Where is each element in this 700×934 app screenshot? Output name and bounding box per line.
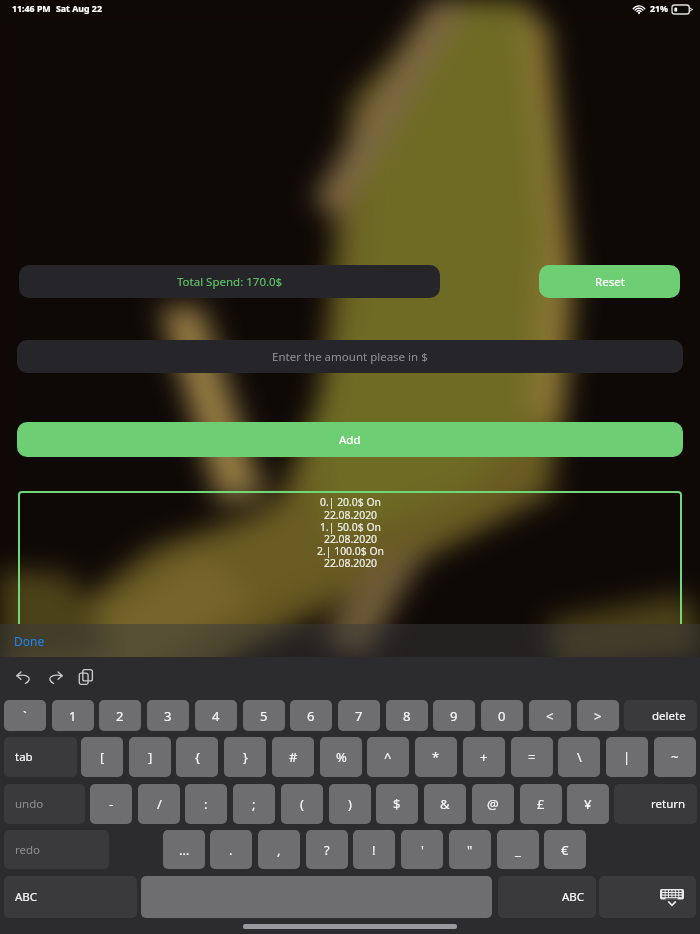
button[interactable]: 2 <box>99 700 141 731</box>
button[interactable]: Undo <box>10 663 38 691</box>
staticText: / <box>157 795 162 813</box>
button[interactable]: ? <box>306 830 348 869</box>
staticText: % <box>336 748 347 766</box>
button[interactable]: & <box>424 784 466 824</box>
staticText: ! <box>372 841 376 859</box>
button[interactable]: ` <box>4 700 46 731</box>
button[interactable]: { <box>176 737 218 777</box>
button[interactable]: ; <box>233 784 275 824</box>
button[interactable]: - <box>90 784 132 824</box>
button[interactable]: , <box>258 830 300 869</box>
staticText: < <box>546 707 554 725</box>
button[interactable]: Enter the amount please in $ <box>17 340 683 373</box>
button[interactable]: " <box>449 830 491 869</box>
button[interactable]: ) <box>329 784 371 824</box>
button[interactable]: 7 <box>338 700 380 731</box>
staticText: + <box>480 748 488 766</box>
staticText: ABC <box>15 889 38 905</box>
button[interactable]: 5 <box>243 700 285 731</box>
staticText: _ <box>515 841 521 859</box>
button[interactable]: = <box>511 737 553 777</box>
staticText: 5 <box>260 707 268 725</box>
staticText: 2 <box>116 707 124 725</box>
staticText: ` <box>23 707 27 725</box>
staticText: | <box>623 748 631 766</box>
staticText: & <box>440 795 450 813</box>
button[interactable]: + <box>463 737 505 777</box>
staticText: $ <box>393 795 401 813</box>
button[interactable]: ¥ <box>567 784 609 824</box>
staticText: tab <box>15 749 33 765</box>
button[interactable]: # <box>272 737 314 777</box>
button[interactable]: \ <box>558 737 600 777</box>
staticText: return <box>651 796 686 812</box>
staticText: } <box>243 748 248 766</box>
button[interactable]: redo <box>4 830 109 869</box>
button[interactable]: 6 <box>290 700 332 731</box>
staticText: " <box>467 841 473 859</box>
button[interactable]: ~ <box>654 737 696 777</box>
button[interactable]: } <box>224 737 266 777</box>
button[interactable]: 1 <box>52 700 94 731</box>
button[interactable]: : <box>185 784 227 824</box>
staticText: , <box>277 841 281 859</box>
button[interactable]: _ <box>497 830 539 869</box>
button[interactable]: 0 <box>481 700 523 731</box>
staticText: @ <box>487 795 499 813</box>
button[interactable]: * <box>415 737 457 777</box>
button[interactable]: ABC <box>4 876 137 918</box>
button[interactable]: ( <box>281 784 323 824</box>
staticText: ? <box>324 841 330 859</box>
button[interactable]: / <box>138 784 180 824</box>
button[interactable]: $ <box>376 784 418 824</box>
staticText: = <box>528 748 536 766</box>
button[interactable]: delete <box>624 700 697 731</box>
staticText: [ <box>100 748 105 766</box>
staticText: ) <box>348 795 352 813</box>
button[interactable]: ABC <box>498 876 596 918</box>
staticText: ( <box>300 795 304 813</box>
button[interactable]: % <box>320 737 362 777</box>
button[interactable]: [ <box>81 737 123 777</box>
button[interactable]: undo <box>4 784 85 824</box>
button[interactable]: ' <box>401 830 443 869</box>
staticText: : <box>204 795 208 813</box>
button[interactable]: Add <box>17 422 683 457</box>
button[interactable]: 8 <box>386 700 428 731</box>
staticText: 0 <box>498 707 506 725</box>
staticText: redo <box>15 842 41 858</box>
button[interactable]: > <box>577 700 619 731</box>
button[interactable]: ! <box>353 830 395 869</box>
button[interactable]: | <box>606 737 648 777</box>
staticText: ' <box>421 841 424 859</box>
button[interactable]: 4 <box>195 700 237 731</box>
staticText: 0.| 20.0$ On 22.08.2020 1.| 50.0$ On 22.… <box>317 495 384 570</box>
button[interactable]: . <box>210 830 252 869</box>
staticText: ~ <box>671 748 679 766</box>
button[interactable]: € <box>544 830 586 869</box>
button[interactable]: ] <box>129 737 171 777</box>
button[interactable]: £ <box>520 784 562 824</box>
staticText: € <box>561 841 569 859</box>
staticText: 21% <box>650 3 668 15</box>
button[interactable]: Done <box>14 633 45 649</box>
staticText: 1 <box>69 707 77 725</box>
staticText: - <box>109 795 114 813</box>
button[interactable]: tab <box>4 737 77 777</box>
button[interactable]: Redo <box>41 663 69 691</box>
button[interactable]: … <box>163 830 205 869</box>
staticText: * <box>432 748 440 766</box>
button[interactable]: Reset <box>539 265 680 298</box>
button[interactable]: return <box>614 784 697 824</box>
button[interactable]: ^ <box>367 737 409 777</box>
button[interactable]: @ <box>472 784 514 824</box>
button[interactable]: Hide keyboard <box>599 876 696 918</box>
button[interactable]: 9 <box>433 700 475 731</box>
staticText: { <box>195 748 200 766</box>
button[interactable]: < <box>529 700 571 731</box>
button[interactable]: 3 <box>147 700 189 731</box>
staticText: ] <box>148 748 153 766</box>
button[interactable]: Total Spend: 170.0$ <box>19 265 440 298</box>
button[interactable]: Paste <box>72 663 100 691</box>
